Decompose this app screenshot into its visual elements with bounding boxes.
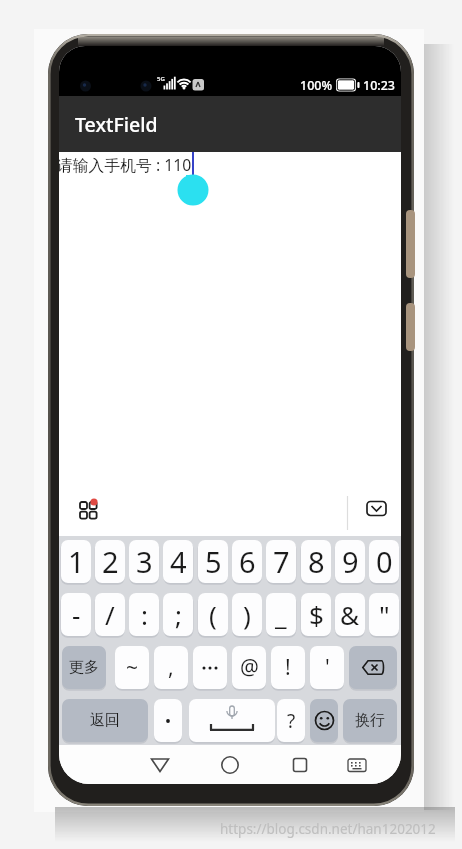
button[interactable]: 3 bbox=[129, 540, 159, 583]
staticText: 100% bbox=[300, 77, 333, 94]
button[interactable]: , bbox=[154, 646, 188, 689]
button[interactable] bbox=[193, 646, 227, 689]
staticText: & bbox=[340, 597, 360, 632]
staticText: 3 bbox=[136, 542, 153, 581]
button[interactable]: ) bbox=[232, 593, 262, 636]
staticText: 请输入手机号 : 110 bbox=[59, 154, 192, 176]
staticText: 5G bbox=[157, 75, 165, 83]
staticText: - bbox=[72, 597, 81, 632]
button[interactable] bbox=[143, 748, 177, 782]
button[interactable]: ' bbox=[310, 646, 344, 689]
button[interactable] bbox=[359, 496, 393, 530]
button[interactable]: ? bbox=[277, 699, 305, 742]
staticText: " bbox=[379, 597, 390, 632]
staticText: 4 bbox=[170, 542, 187, 581]
button[interactable]: ! bbox=[271, 646, 305, 689]
staticText: 返回 bbox=[90, 711, 120, 730]
button[interactable]: 换行 bbox=[343, 699, 397, 742]
staticText: 更多 bbox=[69, 658, 99, 677]
staticText: 6 bbox=[239, 542, 256, 581]
staticText: 8 bbox=[308, 542, 325, 581]
staticText: TextField bbox=[75, 111, 158, 138]
staticText: @ bbox=[240, 653, 259, 682]
button[interactable]: 4 bbox=[163, 540, 193, 583]
button[interactable]: 6 bbox=[232, 540, 262, 583]
button[interactable]: / bbox=[95, 593, 125, 636]
staticText: 2 bbox=[102, 542, 119, 581]
button[interactable] bbox=[189, 699, 275, 742]
staticText: https://blog.csdn.net/han1202012 bbox=[220, 820, 436, 838]
button[interactable]: 返回 bbox=[62, 699, 148, 742]
button[interactable]: 请输入手机号 : 110 bbox=[59, 152, 401, 490]
staticText: ( bbox=[209, 597, 217, 632]
button[interactable] bbox=[340, 748, 374, 782]
button[interactable] bbox=[154, 699, 182, 742]
button[interactable]: & bbox=[335, 593, 365, 636]
staticText: ' bbox=[325, 653, 330, 682]
button[interactable]: " bbox=[369, 593, 399, 636]
button[interactable]: @ bbox=[232, 646, 266, 689]
button[interactable] bbox=[310, 699, 338, 742]
button[interactable]: 更多 bbox=[62, 646, 106, 689]
button[interactable]: ~ bbox=[115, 646, 149, 689]
button[interactable]: - bbox=[61, 593, 91, 636]
button[interactable]: 9 bbox=[335, 540, 365, 583]
staticText: 5 bbox=[205, 542, 222, 581]
staticText: : bbox=[141, 597, 148, 632]
staticText: , bbox=[168, 653, 174, 682]
staticText: 1 bbox=[68, 542, 85, 581]
staticText: 9 bbox=[342, 542, 359, 581]
button[interactable]: 5 bbox=[198, 540, 228, 583]
button[interactable]: : bbox=[129, 593, 159, 636]
staticText: ? bbox=[287, 708, 296, 734]
staticText: ! bbox=[285, 653, 291, 682]
button[interactable]: 0 bbox=[369, 540, 399, 583]
staticText: 0 bbox=[376, 542, 393, 581]
button[interactable]: 1 bbox=[61, 540, 91, 583]
staticText: 换行 bbox=[355, 711, 385, 730]
staticText: 7 bbox=[273, 542, 290, 581]
staticText: _ bbox=[275, 597, 287, 632]
button[interactable]: _ bbox=[266, 593, 296, 636]
staticText: ) bbox=[243, 597, 251, 632]
button[interactable] bbox=[73, 496, 107, 530]
staticText: $ bbox=[309, 597, 324, 632]
staticText: 10:23 bbox=[363, 77, 396, 94]
button[interactable]: ( bbox=[198, 593, 228, 636]
button[interactable] bbox=[283, 748, 317, 782]
button[interactable]: ; bbox=[163, 593, 193, 636]
staticText: ; bbox=[175, 597, 182, 632]
button[interactable] bbox=[349, 646, 397, 689]
button[interactable]: 2 bbox=[95, 540, 125, 583]
button[interactable]: 7 bbox=[266, 540, 296, 583]
staticText: / bbox=[105, 597, 115, 632]
button[interactable] bbox=[213, 748, 247, 782]
staticText: ~ bbox=[126, 653, 139, 682]
button[interactable]: $ bbox=[301, 593, 331, 636]
button[interactable]: 8 bbox=[301, 540, 331, 583]
